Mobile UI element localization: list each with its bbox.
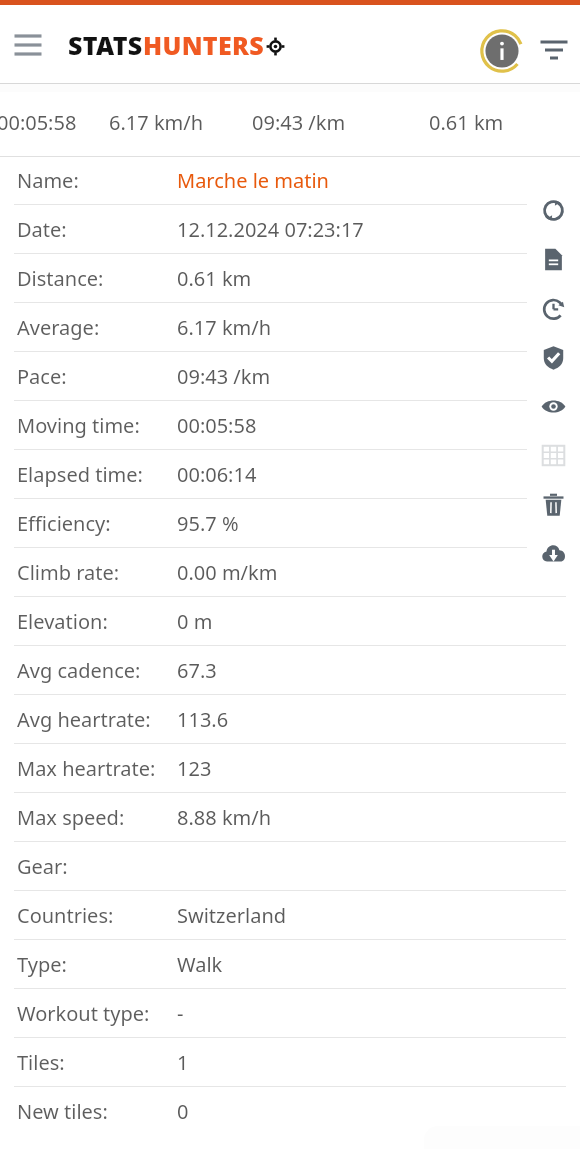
button[interactable]: Refresh: [527, 186, 580, 235]
button[interactable]: History: [527, 284, 580, 333]
staticText: 09:43 /km: [252, 109, 346, 136]
button[interactable]: Pace:: [0, 352, 580, 400]
staticText: 0.00 m/km: [177, 559, 278, 586]
button[interactable]: Type:: [0, 940, 580, 988]
staticText: Distance:: [17, 265, 104, 292]
staticText: 00:06:14: [177, 461, 257, 488]
staticText: Date:: [17, 216, 67, 243]
button[interactable]: Countries:: [0, 891, 580, 939]
staticText: Moving time:: [17, 412, 140, 439]
button[interactable]: Elevation:: [0, 597, 580, 645]
staticText: -: [177, 1000, 184, 1027]
button[interactable]: Gear:: [0, 842, 580, 890]
staticText: Avg cadence:: [17, 657, 141, 684]
button[interactable]: New tiles:: [0, 1087, 580, 1135]
staticText: Elapsed time:: [17, 461, 143, 488]
staticText: 0.61 km: [177, 265, 252, 292]
button[interactable]: STATS: [68, 5, 416, 84]
button[interactable]: Avg heartrate:: [0, 695, 580, 743]
button[interactable]: Date:: [0, 205, 580, 253]
staticText: Max speed:: [17, 804, 125, 831]
button[interactable]: Average:: [0, 303, 580, 351]
staticText: Switzerland: [177, 902, 287, 929]
staticText: 12.12.2024 07:23:17: [177, 216, 364, 243]
staticText: 95.7 %: [177, 510, 239, 537]
staticText: 8.88 km/h: [177, 804, 272, 831]
staticText: 113.6: [177, 706, 229, 733]
button[interactable]: Verified: [527, 333, 580, 382]
staticText: Efficiency:: [17, 510, 111, 537]
staticText: Workout type:: [17, 1000, 150, 1027]
button[interactable]: Distance:: [0, 254, 580, 302]
button[interactable]: Delete: [527, 480, 580, 529]
button[interactable]: Elapsed time:: [0, 450, 580, 498]
button[interactable]: Max speed:: [0, 793, 580, 841]
button[interactable]: Name:: [0, 157, 580, 204]
staticText: HUNTERS: [143, 28, 264, 62]
staticText: 123: [177, 755, 212, 782]
staticText: Elevation:: [17, 608, 108, 635]
button[interactable]: Workout type:: [0, 989, 580, 1037]
staticText: 1: [177, 1049, 189, 1076]
staticText: 0 m: [177, 608, 213, 635]
button[interactable]: Download: [527, 529, 580, 578]
button[interactable]: Tiles:: [0, 1038, 580, 1086]
staticText: Gear:: [17, 853, 68, 880]
button[interactable]: Menu: [8, 25, 48, 65]
staticText: Name:: [17, 167, 79, 194]
button[interactable]: Moving time:: [0, 401, 580, 449]
button[interactable]: Efficiency:: [0, 499, 580, 547]
button[interactable]: Grid: [527, 431, 580, 480]
staticText: 6.17 km/h: [109, 109, 204, 136]
staticText: Pace:: [17, 363, 67, 390]
staticText: 00:05:58: [177, 412, 257, 439]
button[interactable]: Document: [527, 235, 580, 284]
staticText: Tiles:: [17, 1049, 65, 1076]
staticText: Type:: [17, 951, 67, 978]
staticText: New tiles:: [17, 1098, 108, 1125]
staticText: 0.61 km: [429, 109, 504, 136]
button[interactable]: Avg cadence:: [0, 646, 580, 694]
staticText: 67.3: [177, 657, 217, 684]
staticText: Marche le matin: [177, 167, 329, 194]
staticText: 00:05:58: [0, 109, 77, 136]
button[interactable]: Max heartrate:: [0, 744, 580, 792]
button[interactable]: Climb rate:: [0, 548, 580, 596]
button[interactable]: Info: [478, 27, 526, 75]
staticText: Countries:: [17, 902, 114, 929]
staticText: 6.17 km/h: [177, 314, 272, 341]
staticText: STATS: [68, 28, 143, 62]
staticText: Walk: [177, 951, 223, 978]
staticText: Climb rate:: [17, 559, 120, 586]
button[interactable]: Filter: [531, 27, 577, 73]
staticText: Avg heartrate:: [17, 706, 151, 733]
staticText: Average:: [17, 314, 100, 341]
staticText: 0: [177, 1098, 189, 1125]
button[interactable]: Visibility: [527, 382, 580, 431]
staticText: 09:43 /km: [177, 363, 271, 390]
staticText: Max heartrate:: [17, 755, 156, 782]
